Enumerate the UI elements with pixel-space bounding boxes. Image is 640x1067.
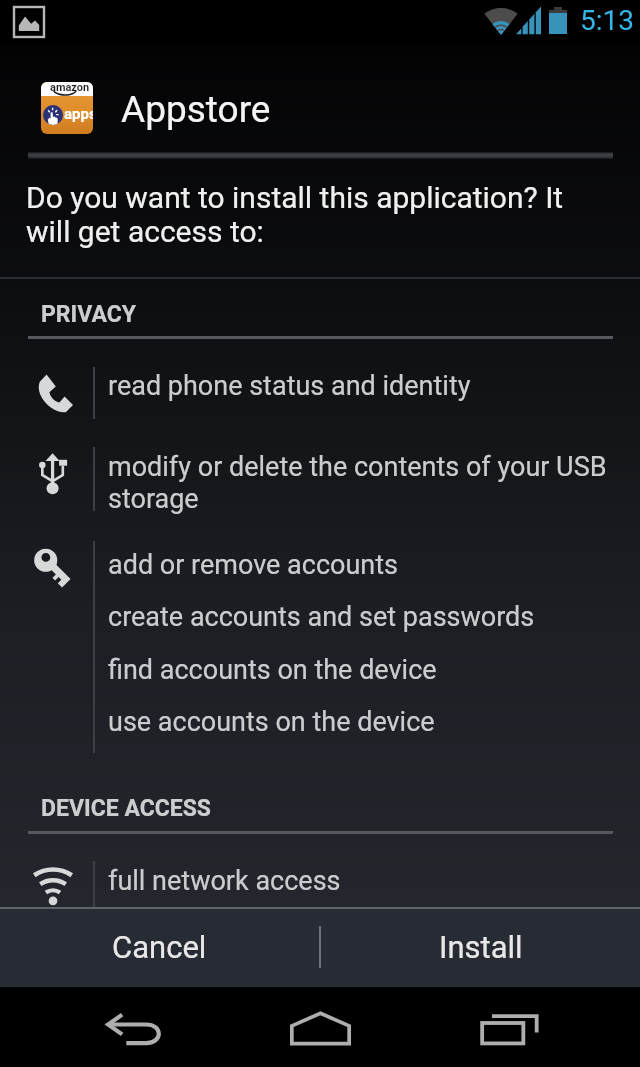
staticText: use accounts on the device <box>108 706 435 738</box>
staticText: Cancel <box>112 929 207 965</box>
staticText: Install <box>439 929 523 965</box>
staticText: create accounts and set passwords <box>108 601 535 633</box>
staticText: modify or delete the contents of your US… <box>108 451 618 514</box>
staticText: Do you want to install this application?… <box>26 180 594 249</box>
button[interactable]: Install <box>321 907 640 987</box>
staticText: amazon <box>50 82 90 94</box>
staticText: find accounts on the device <box>108 654 437 686</box>
staticText: read phone status and identity <box>108 370 471 402</box>
staticText: 5:13 <box>580 4 634 37</box>
staticText: add or remove accounts <box>108 549 399 581</box>
staticText: full network access <box>108 865 341 897</box>
button[interactable]: Home <box>267 988 373 1067</box>
staticText: apps <box>64 105 93 123</box>
button[interactable]: Recent apps <box>457 989 563 1067</box>
staticText: PRIVACY <box>41 301 136 328</box>
staticText: Appstore <box>121 88 271 131</box>
button[interactable]: Back <box>82 989 188 1067</box>
staticText: DEVICE ACCESS <box>41 795 211 822</box>
button[interactable]: Cancel <box>0 907 319 987</box>
